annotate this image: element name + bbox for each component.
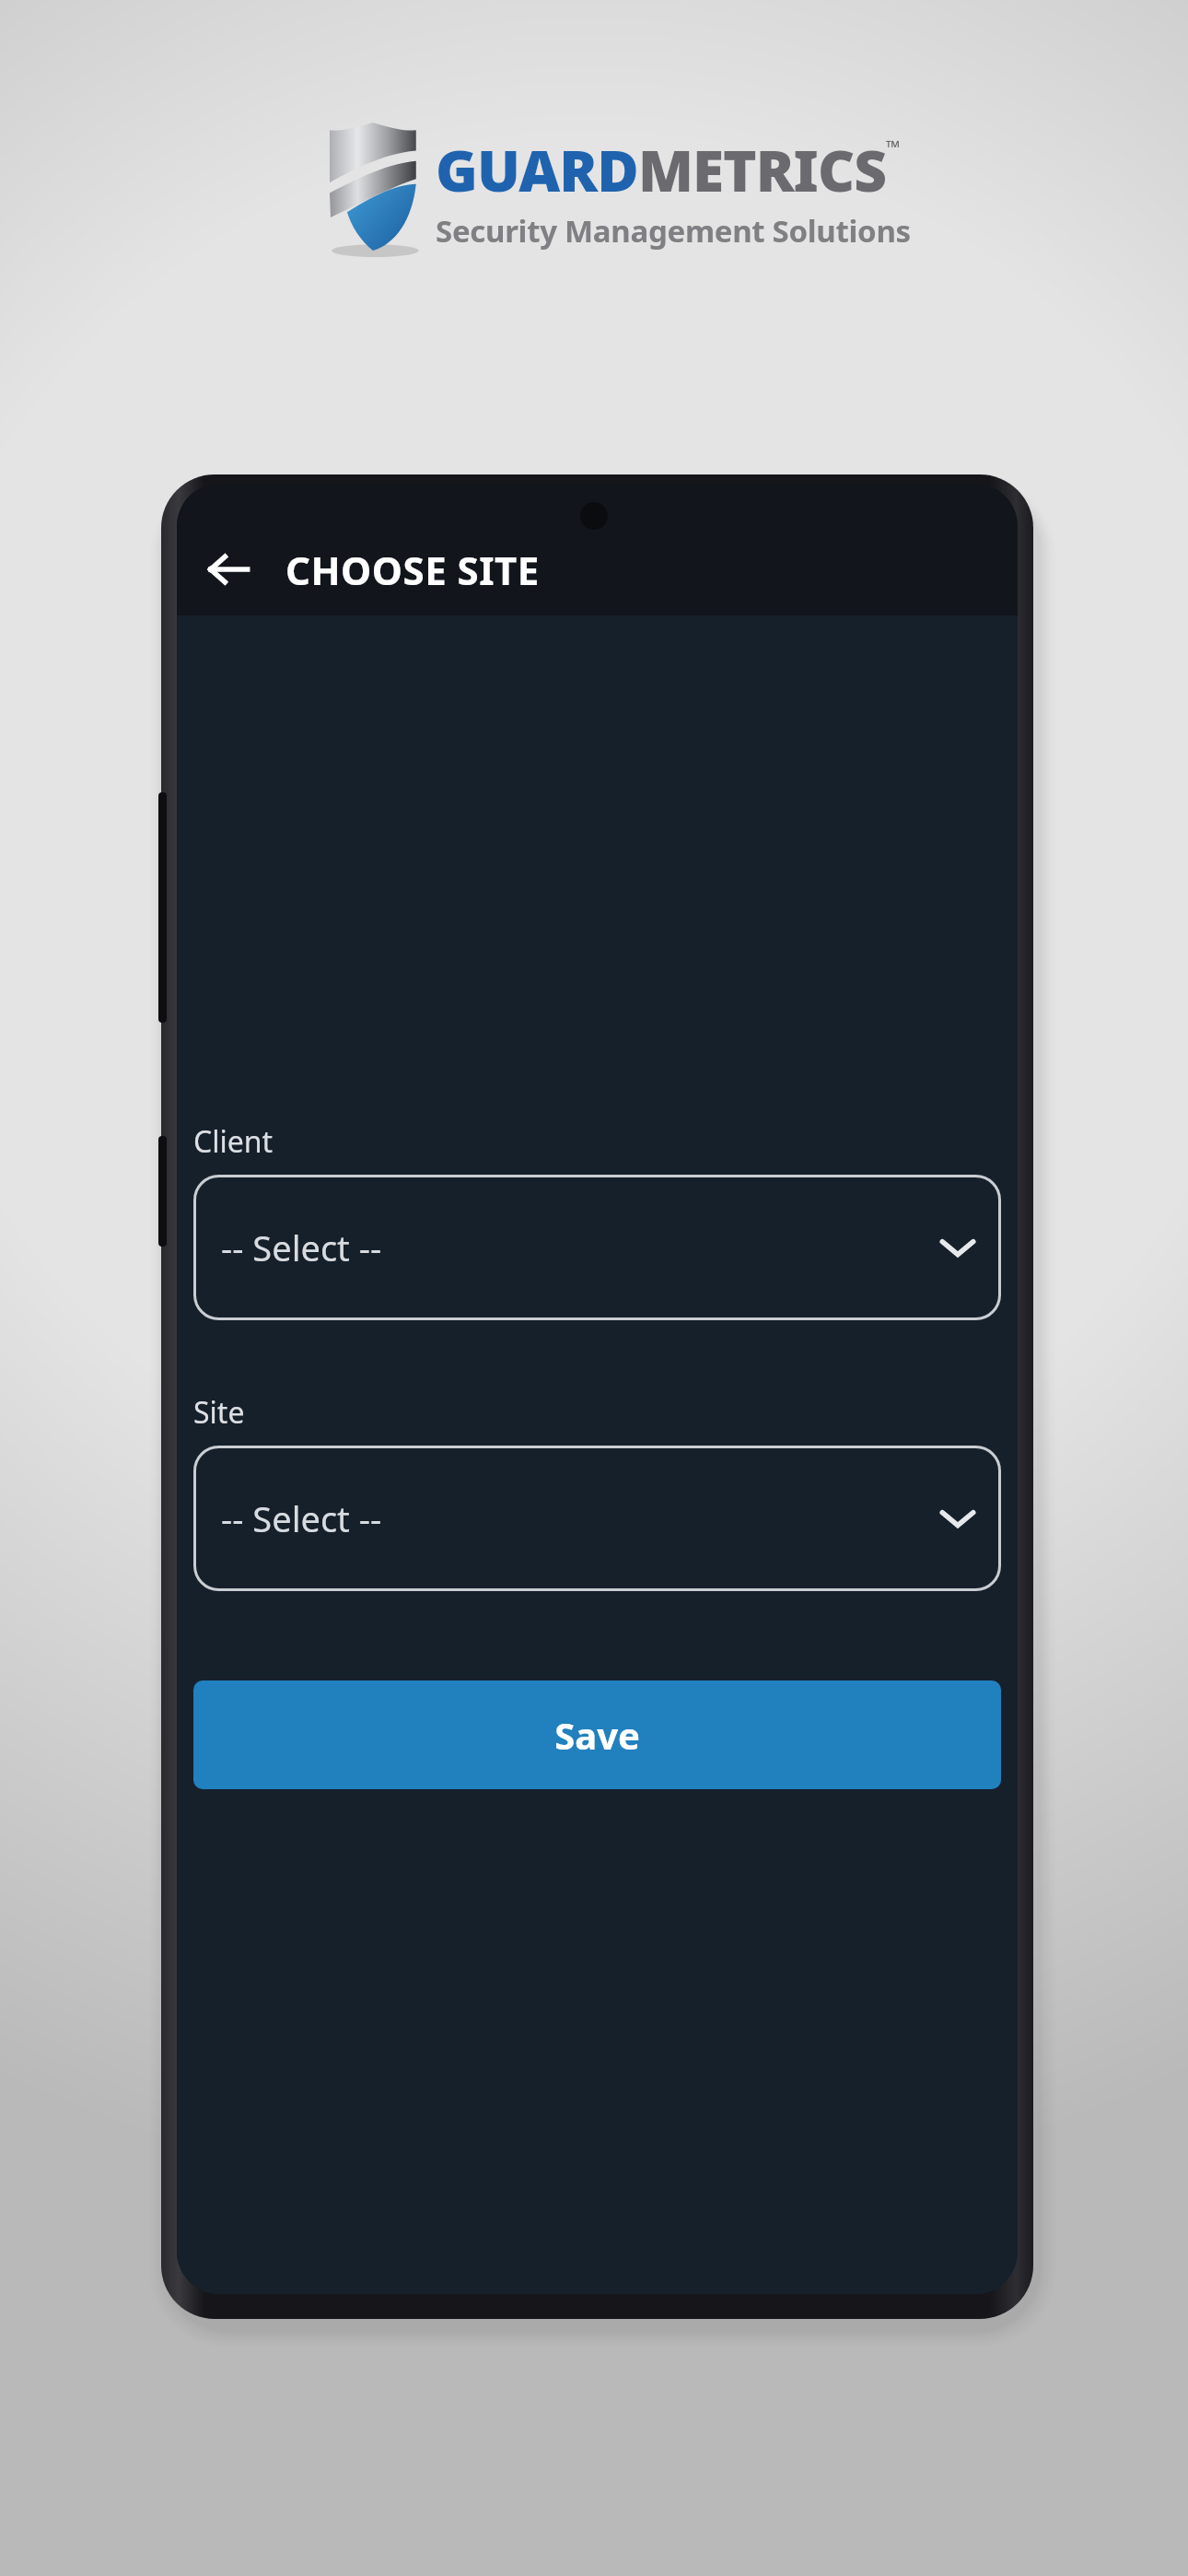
staticText: -- Select -- — [221, 1224, 382, 1271]
staticText: Client — [193, 1121, 274, 1162]
staticText: -- Select -- — [221, 1494, 382, 1542]
staticText: GUARD — [436, 131, 638, 208]
staticText: Site — [193, 1392, 245, 1433]
staticText: ™ — [886, 135, 901, 159]
staticText: METRICS — [638, 131, 886, 208]
staticText: Save — [554, 1710, 640, 1760]
button[interactable]: -- Select -- — [193, 1446, 1001, 1591]
button[interactable]: Back — [193, 534, 263, 604]
button[interactable]: -- Select -- — [193, 1175, 1001, 1320]
staticText: CHOOSE SITE — [285, 544, 540, 596]
button[interactable]: Save — [193, 1680, 1001, 1789]
staticText: Security Management Solutions — [436, 210, 911, 252]
